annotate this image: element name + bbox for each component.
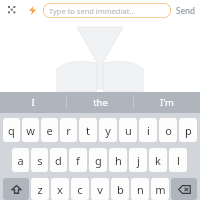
button[interactable]: x bbox=[51, 178, 69, 200]
button[interactable]: Shift bbox=[3, 178, 29, 200]
staticText: y bbox=[105, 123, 111, 138]
button[interactable]: g bbox=[89, 148, 107, 172]
staticText: a bbox=[17, 153, 24, 168]
staticText: z bbox=[37, 182, 43, 197]
button[interactable]: q bbox=[3, 118, 20, 142]
staticText: i bbox=[147, 123, 150, 138]
button[interactable]: Backspace bbox=[171, 178, 197, 200]
button[interactable]: n bbox=[131, 178, 149, 200]
button[interactable]: I bbox=[0, 92, 66, 113]
staticText: r bbox=[66, 123, 71, 138]
staticText: k bbox=[155, 153, 161, 168]
staticText: t bbox=[86, 123, 90, 138]
button[interactable]: m bbox=[151, 178, 169, 200]
button[interactable]: o bbox=[159, 118, 177, 142]
staticText: m bbox=[155, 182, 166, 197]
staticText: b bbox=[117, 182, 124, 197]
button[interactable]: h bbox=[109, 148, 127, 172]
button[interactable]: k bbox=[149, 148, 167, 172]
staticText: u bbox=[125, 123, 132, 138]
button[interactable]: i bbox=[139, 118, 157, 142]
button[interactable]: e bbox=[41, 118, 58, 142]
button[interactable]: y bbox=[99, 118, 117, 142]
button[interactable]: u bbox=[119, 118, 137, 142]
button[interactable]: Keyboard options bbox=[5, 3, 19, 17]
staticText: d bbox=[55, 153, 62, 168]
staticText: v bbox=[97, 182, 103, 197]
staticText: p bbox=[185, 123, 192, 138]
staticText: I'm bbox=[160, 96, 174, 109]
button[interactable]: r bbox=[60, 118, 77, 142]
staticText: o bbox=[165, 123, 172, 138]
button[interactable]: j bbox=[129, 148, 147, 172]
button[interactable]: l bbox=[169, 148, 187, 172]
button[interactable]: d bbox=[50, 148, 67, 172]
button[interactable]: Quick send bbox=[25, 3, 39, 17]
button[interactable]: z bbox=[31, 178, 49, 200]
staticText: c bbox=[77, 182, 83, 197]
button[interactable]: f bbox=[69, 148, 87, 172]
button[interactable]: Send bbox=[176, 0, 195, 20]
button[interactable]: p bbox=[179, 118, 197, 142]
staticText: q bbox=[8, 123, 15, 138]
button[interactable]: t bbox=[79, 118, 97, 142]
button[interactable]: Type to send immediat... bbox=[43, 3, 171, 18]
staticText: h bbox=[115, 153, 122, 168]
staticText: j bbox=[137, 153, 140, 168]
staticText: x bbox=[57, 182, 63, 197]
button[interactable]: c bbox=[71, 178, 89, 200]
button[interactable]: s bbox=[31, 148, 48, 172]
staticText: e bbox=[46, 123, 53, 138]
staticText: g bbox=[95, 153, 102, 168]
button[interactable]: I'm bbox=[134, 92, 200, 113]
button[interactable]: the bbox=[67, 92, 133, 113]
button[interactable]: b bbox=[111, 178, 129, 200]
staticText: Send bbox=[176, 5, 195, 16]
staticText: l bbox=[177, 153, 180, 168]
staticText: n bbox=[137, 182, 144, 197]
staticText: w bbox=[26, 123, 35, 138]
staticText: f bbox=[76, 153, 80, 168]
staticText: I bbox=[31, 96, 35, 109]
button[interactable]: w bbox=[22, 118, 39, 142]
button[interactable]: a bbox=[12, 148, 29, 172]
staticText: the bbox=[93, 96, 108, 109]
staticText: Type to send immediat... bbox=[49, 6, 136, 16]
button[interactable]: v bbox=[91, 178, 109, 200]
staticText: s bbox=[37, 153, 43, 168]
